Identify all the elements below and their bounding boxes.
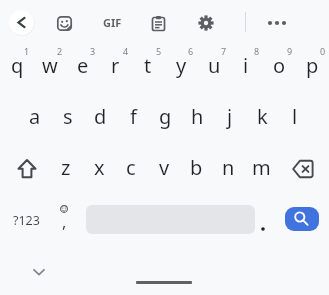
button[interactable]	[143, 8, 173, 38]
button[interactable]: r	[99, 41, 131, 89]
button[interactable]	[5, 145, 49, 193]
button[interactable]: i	[230, 41, 262, 89]
button[interactable]	[285, 207, 319, 231]
staticText: m	[252, 154, 271, 181]
button[interactable]: b	[180, 143, 212, 191]
button[interactable]: y	[165, 41, 197, 89]
button[interactable]: j	[214, 92, 246, 140]
button[interactable]: k	[246, 92, 278, 140]
staticText: v	[159, 154, 170, 181]
button[interactable]: d	[84, 92, 116, 140]
button[interactable]: s	[52, 92, 84, 140]
staticText: i	[243, 52, 249, 79]
staticText: p	[306, 52, 319, 79]
button[interactable]: a	[19, 92, 51, 140]
staticText: x	[94, 154, 105, 181]
staticText: g	[159, 103, 172, 130]
staticText: h	[191, 103, 204, 130]
staticText: y	[176, 52, 187, 79]
staticText: e	[77, 52, 89, 79]
staticText: 0	[320, 45, 326, 57]
staticText: 9	[287, 45, 293, 57]
staticText: 5	[156, 45, 162, 57]
button[interactable]: GIF	[95, 7, 129, 37]
staticText: 6	[188, 45, 194, 57]
staticText: o	[273, 52, 286, 79]
staticText: d	[94, 103, 107, 130]
button[interactable]	[262, 8, 292, 38]
staticText: z	[61, 154, 71, 181]
staticText: GIF	[103, 15, 122, 30]
staticText: 7	[221, 45, 227, 57]
button[interactable]: f	[117, 92, 149, 140]
button[interactable]: m	[245, 143, 277, 191]
staticText: 8	[254, 45, 260, 57]
staticText: q	[11, 52, 24, 79]
staticText: b	[190, 154, 203, 181]
button[interactable]	[8, 9, 35, 36]
button[interactable]: c	[115, 143, 147, 191]
staticText: 1	[24, 45, 30, 57]
button[interactable]: q	[1, 41, 33, 89]
staticText: 3	[90, 45, 96, 57]
button[interactable]	[49, 8, 79, 38]
staticText: n	[222, 154, 235, 181]
button[interactable]: o	[263, 41, 295, 89]
staticText: ?123	[13, 212, 40, 229]
staticText: 4	[123, 45, 129, 57]
staticText: a	[29, 103, 41, 130]
staticText: f	[130, 103, 137, 130]
staticText: k	[257, 103, 268, 130]
button[interactable]: n	[212, 143, 244, 191]
staticText: s	[63, 103, 73, 130]
button[interactable]	[256, 222, 270, 236]
button[interactable]: l	[279, 92, 311, 140]
button[interactable]	[281, 145, 325, 193]
staticText: 2	[57, 45, 63, 57]
staticText: w	[42, 52, 58, 79]
button[interactable]: x	[83, 143, 115, 191]
button[interactable]: t	[132, 41, 164, 89]
staticText: r	[111, 52, 120, 79]
button[interactable]: ,	[48, 194, 82, 242]
button[interactable]: g	[149, 92, 181, 140]
button[interactable]: v	[148, 143, 180, 191]
staticText: c	[126, 154, 136, 181]
button[interactable]	[191, 8, 221, 38]
button[interactable]: p	[296, 41, 328, 89]
button[interactable]: u	[198, 41, 230, 89]
staticText: l	[292, 103, 298, 130]
button[interactable]: ?123	[4, 196, 48, 244]
staticText: t	[144, 52, 152, 79]
button[interactable]: w	[34, 41, 66, 89]
button[interactable]: e	[67, 41, 99, 89]
button[interactable]	[24, 260, 54, 284]
staticText: ,	[62, 211, 67, 233]
button[interactable]: h	[181, 92, 213, 140]
button[interactable]: z	[50, 143, 82, 191]
staticText: j	[227, 103, 233, 130]
staticText: u	[208, 52, 221, 79]
